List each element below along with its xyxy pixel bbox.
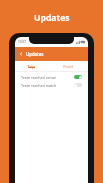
staticText: Team reached match [21, 83, 57, 88]
button[interactable]: Switch on [74, 75, 82, 79]
button[interactable]: Food [47, 61, 88, 71]
button[interactable]: Back [18, 51, 24, 57]
staticText: Food [63, 64, 73, 69]
staticText: Updates [26, 51, 44, 57]
button[interactable]: Team reached venue [15, 73, 88, 81]
button[interactable]: Trip [15, 61, 47, 71]
button[interactable]: Team reached match [15, 81, 88, 89]
staticText: Updates [34, 12, 70, 24]
staticText: Team reached venue [21, 75, 56, 80]
button[interactable]: Switch off [74, 83, 82, 87]
staticText: Trip [27, 64, 35, 69]
staticText: 10:07 [18, 40, 26, 44]
